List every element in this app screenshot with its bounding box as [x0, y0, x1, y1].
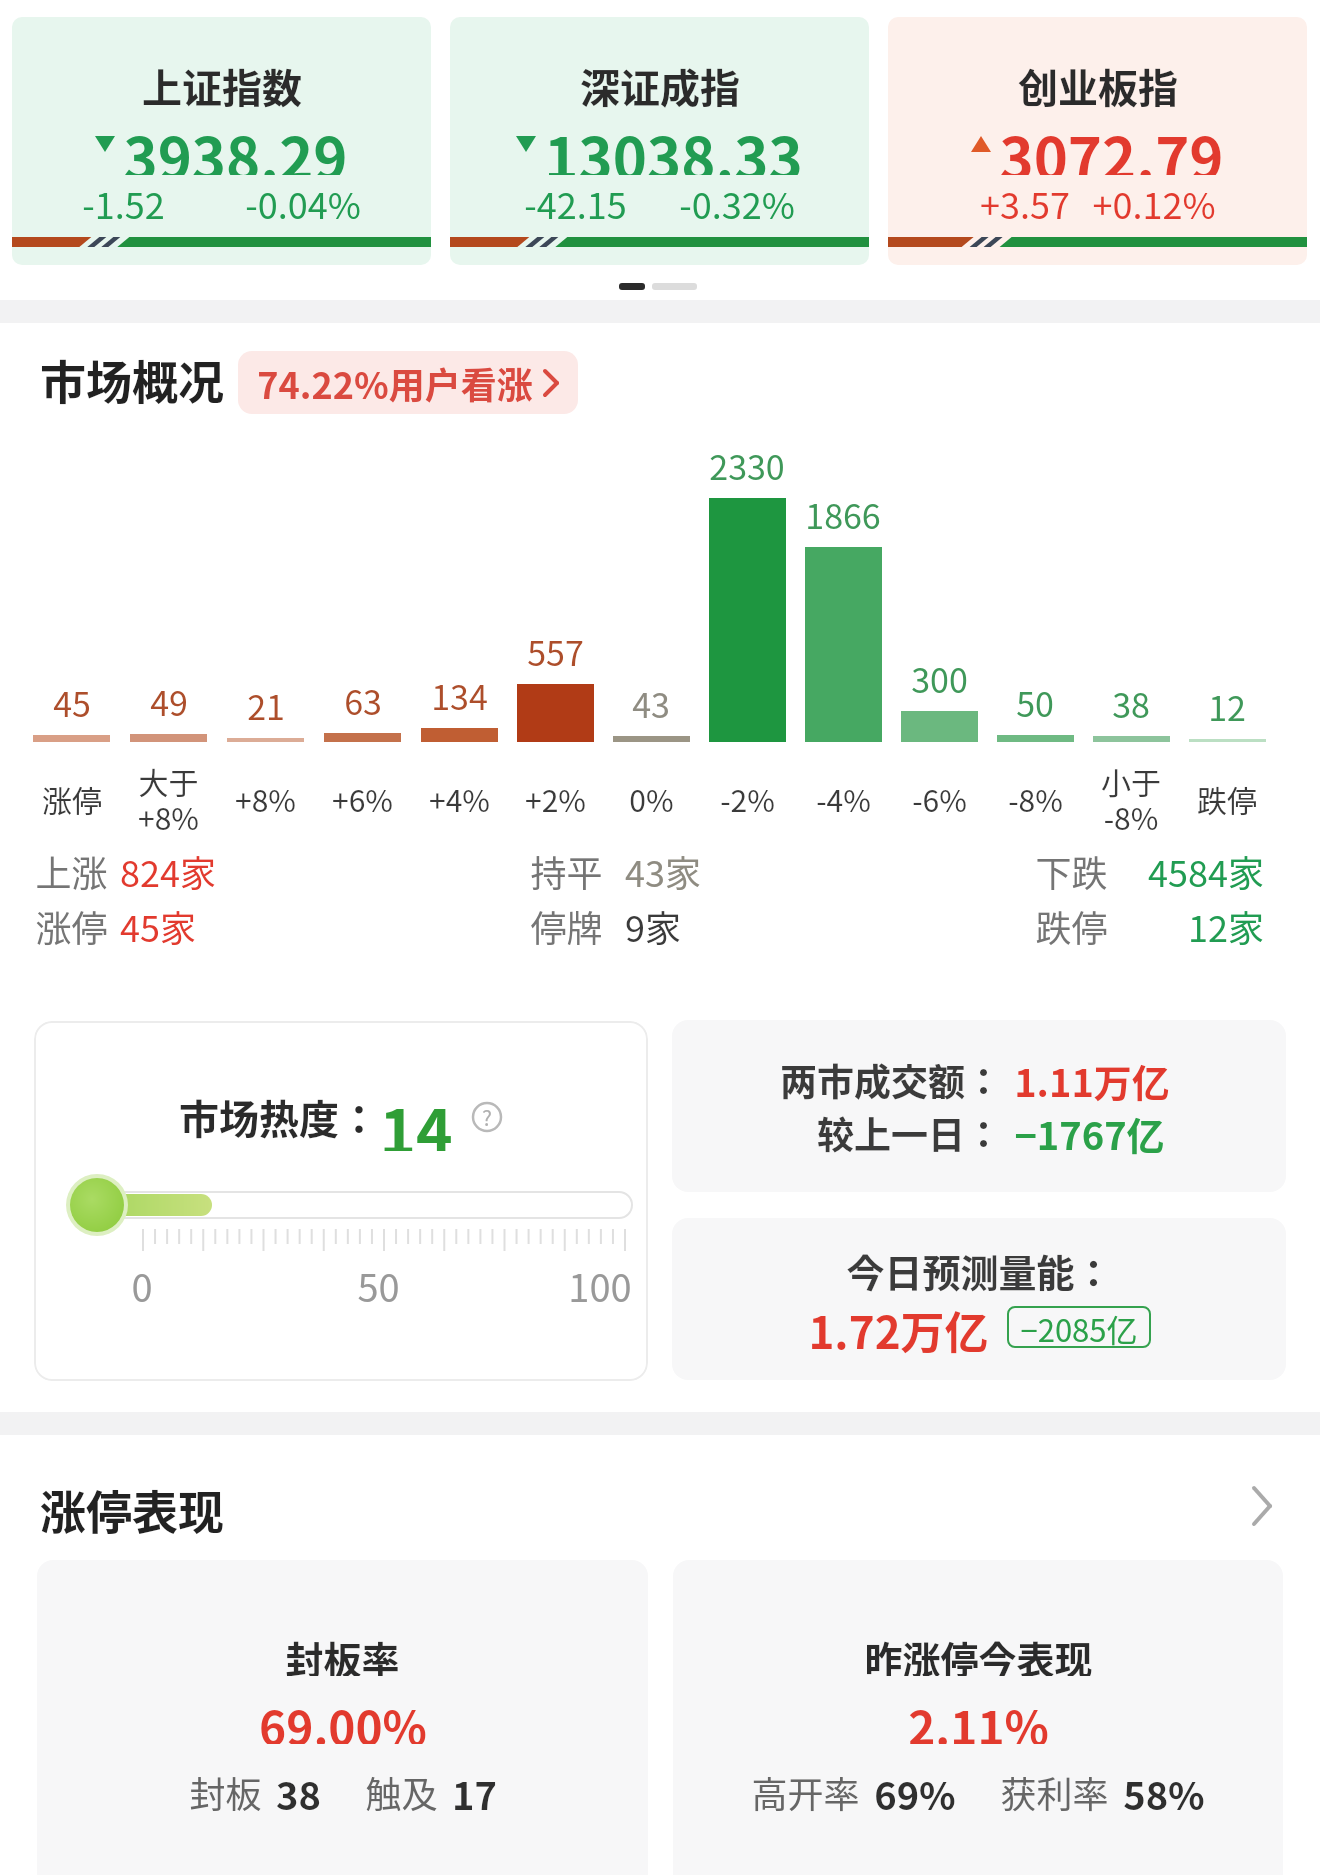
staticText: 1.11万亿 — [1014, 1053, 1170, 1106]
staticText: 74.22%用户看涨 — [257, 357, 533, 409]
staticText: 封板率 — [285, 1630, 400, 1676]
button[interactable]: 创业板指 — [888, 17, 1307, 265]
staticText: 21 — [247, 681, 285, 730]
staticText: 45家 — [120, 900, 196, 950]
button[interactable]: 上证指数 — [12, 17, 431, 265]
staticText: 下跌 — [1035, 845, 1108, 895]
staticText: 13038.33 — [544, 113, 803, 175]
staticText: 38 — [1112, 679, 1150, 728]
staticText: 69.00% — [259, 1692, 427, 1744]
staticText: 49 — [150, 677, 188, 726]
staticText: 43家 — [625, 845, 701, 895]
staticText: -2% — [720, 777, 775, 820]
staticText: 12家 — [1188, 900, 1264, 950]
staticText: 557 — [527, 627, 584, 676]
staticText: 触及 — [365, 1766, 438, 1818]
staticText: +4% — [429, 777, 490, 820]
button[interactable]: 今日预测量能： — [672, 1218, 1286, 1380]
staticText: 300 — [911, 654, 968, 703]
staticText: +6% — [332, 777, 393, 820]
staticText: 涨停 — [35, 900, 108, 950]
staticText: 昨涨停今表现 — [864, 1630, 1093, 1676]
staticText: +8% — [235, 777, 296, 820]
staticText: 深证成指 — [580, 57, 740, 113]
staticText: 停牌 — [530, 900, 603, 950]
staticText: 持平 — [530, 845, 603, 895]
staticText: 涨停 — [42, 777, 102, 820]
staticText: −2085亿 — [1020, 1306, 1138, 1348]
staticText: 134 — [431, 671, 488, 720]
staticText: 上涨 — [35, 845, 108, 895]
staticText: 3072.79 — [999, 113, 1224, 175]
staticText: -8% — [1008, 777, 1063, 820]
button[interactable]: 74.22%用户看涨 — [257, 351, 559, 414]
staticText: 1866 — [805, 490, 881, 539]
staticText: 市场热度： — [179, 1088, 379, 1146]
staticText: -0.04% — [245, 177, 361, 229]
button[interactable]: 两市成交额： — [672, 1020, 1286, 1192]
staticText: -6% — [912, 777, 967, 820]
staticText: 824家 — [120, 845, 216, 895]
staticText: +3.57 — [980, 177, 1070, 229]
staticText: 4584家 — [1148, 845, 1264, 895]
button[interactable]: 深证成指 — [450, 17, 869, 265]
staticText: 创业板指 — [1018, 57, 1178, 113]
staticText: ? — [482, 1102, 492, 1132]
staticText: 50 — [1016, 678, 1054, 727]
staticText: 今日预测量能： — [846, 1243, 1113, 1298]
button[interactable]: 市场热度： — [34, 1021, 648, 1381]
staticText: −1767亿 — [1014, 1106, 1165, 1159]
staticText: 小于 -8% — [1101, 759, 1161, 838]
staticText: 涨停表现 — [40, 1476, 224, 1540]
staticText: 14 — [379, 1083, 453, 1151]
staticText: 43 — [632, 679, 670, 728]
staticText: 上证指数 — [142, 57, 302, 113]
staticText: 2.11% — [908, 1692, 1049, 1744]
staticText: 2330 — [709, 441, 785, 490]
staticText: 9家 — [625, 900, 681, 950]
staticText: 1.72万亿 — [808, 1298, 989, 1356]
staticText: +2% — [525, 777, 586, 820]
button[interactable]: 昨涨停今表现 — [673, 1560, 1283, 1875]
staticText: 69% — [874, 1766, 956, 1818]
staticText: 0 — [131, 1258, 153, 1313]
staticText: 市场概况 — [40, 346, 224, 410]
staticText: 获利率 — [1000, 1766, 1109, 1818]
staticText: 0% — [629, 777, 674, 820]
button[interactable]: 封板率 — [37, 1560, 648, 1875]
staticText: +0.12% — [1092, 177, 1216, 229]
staticText: 50 — [357, 1258, 400, 1313]
staticText: 17 — [452, 1766, 497, 1818]
staticText: -0.32% — [679, 177, 795, 229]
staticText: 3938.29 — [123, 113, 348, 175]
staticText: 封板 — [189, 1766, 262, 1818]
staticText: -1.52 — [82, 177, 165, 229]
staticText: 大于 +8% — [138, 759, 199, 838]
staticText: 38 — [276, 1766, 321, 1818]
staticText: 跌停 — [1197, 777, 1257, 820]
staticText: -4% — [816, 777, 871, 820]
staticText: 较上一日： — [817, 1106, 1002, 1159]
staticText: -42.15 — [524, 177, 627, 229]
staticText: 63 — [344, 676, 382, 725]
staticText: 100 — [568, 1258, 632, 1313]
staticText: 高开率 — [751, 1766, 860, 1818]
staticText: 两市成交额： — [780, 1053, 1002, 1106]
staticText: 58% — [1123, 1766, 1205, 1818]
staticText: 12 — [1208, 682, 1246, 731]
staticText: 跌停 — [1035, 900, 1108, 950]
staticText: 45 — [53, 678, 91, 727]
